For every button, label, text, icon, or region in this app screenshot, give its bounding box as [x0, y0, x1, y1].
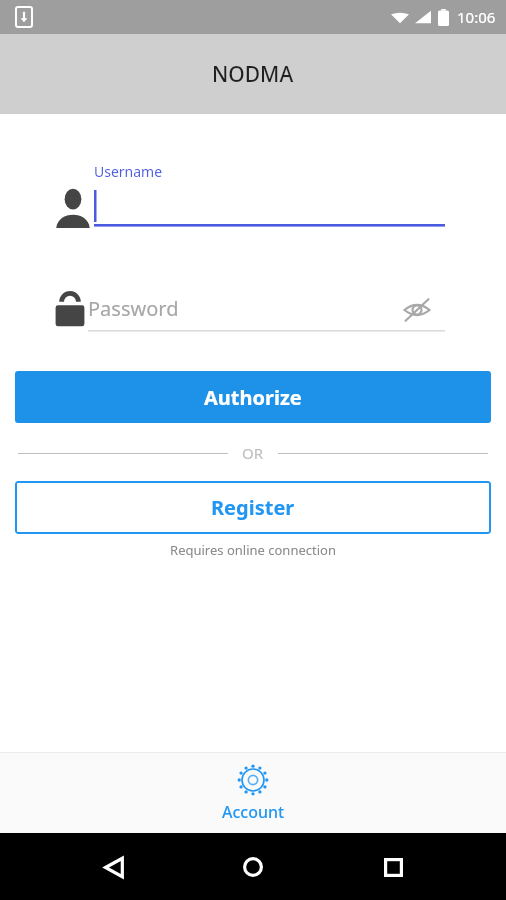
staticText: Authorize: [204, 384, 302, 411]
staticText: NODMA: [212, 60, 294, 89]
staticText: Register: [211, 494, 295, 521]
staticText: 10:06: [457, 7, 496, 27]
staticText: Account: [222, 801, 285, 823]
button[interactable]: Home: [235, 849, 271, 885]
button[interactable]: Show password: [398, 295, 436, 325]
staticText: Password: [88, 295, 179, 322]
button[interactable]: Back: [95, 849, 131, 885]
button[interactable]: Password: [0, 286, 506, 338]
staticText: OR: [242, 443, 264, 463]
button[interactable]: Username: [0, 150, 506, 240]
button[interactable]: Account: [0, 763, 506, 823]
staticText: Username: [94, 162, 163, 181]
staticText: Requires online connection: [0, 541, 506, 559]
button[interactable]: Recent apps: [375, 849, 411, 885]
button[interactable]: Register: [15, 481, 491, 534]
button[interactable]: Authorize: [15, 371, 491, 423]
